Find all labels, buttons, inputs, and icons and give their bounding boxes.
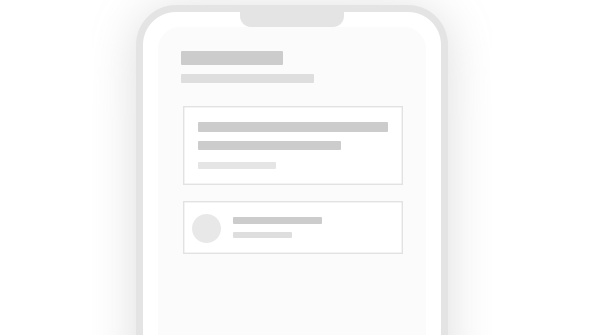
button[interactable]: Loading article [183,106,403,185]
button[interactable]: Loading contact [183,201,403,254]
